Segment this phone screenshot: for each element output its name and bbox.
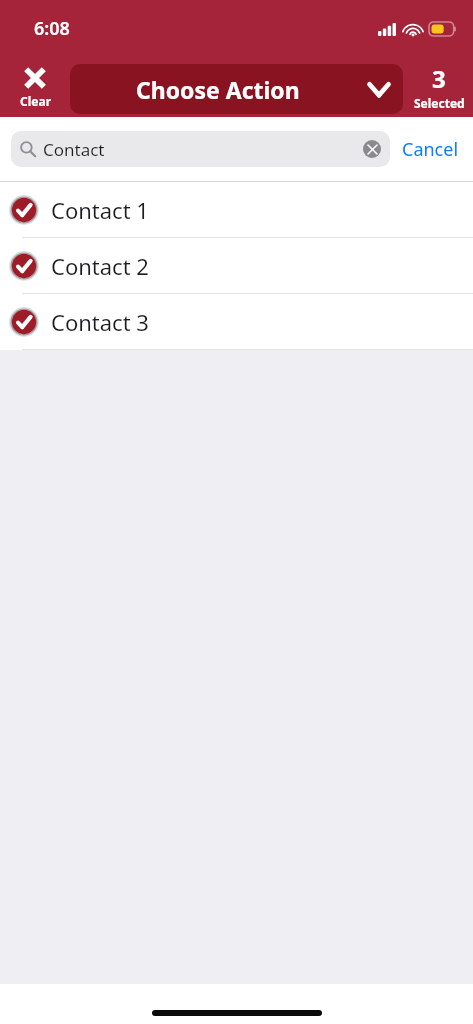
staticText: Choose Action	[136, 74, 300, 105]
other: Clear	[22, 65, 48, 91]
button[interactable]: Choose Action	[70, 64, 403, 114]
other: Selected	[9, 195, 39, 225]
staticText: Contact 1	[51, 195, 149, 225]
button[interactable]: Selected	[0, 238, 473, 293]
staticText: Contact 2	[51, 251, 149, 281]
staticText: Cancel	[402, 137, 459, 162]
button[interactable]: Cancel	[390, 131, 461, 168]
other: Selected	[9, 307, 39, 337]
staticText: Contact	[43, 138, 105, 161]
staticText: Contact 3	[51, 307, 149, 337]
other: Selected	[9, 251, 39, 281]
button[interactable]: Selected	[0, 182, 473, 237]
staticText: Selected	[414, 95, 465, 111]
staticText: Clear	[20, 93, 51, 109]
button[interactable]: Selected	[0, 294, 473, 349]
button[interactable]: Contact	[11, 131, 390, 167]
button[interactable]: Clear search text	[363, 140, 381, 158]
staticText: 6:08	[34, 16, 70, 41]
button[interactable]: 3	[405, 62, 473, 111]
staticText: 3	[432, 62, 446, 95]
button[interactable]: Clear	[6, 63, 64, 111]
